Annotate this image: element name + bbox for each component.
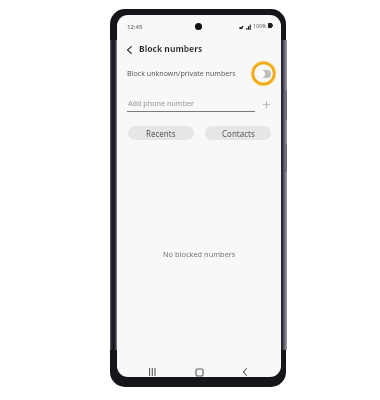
staticText: Block numbers	[139, 43, 203, 55]
staticText: 12:45	[127, 23, 143, 31]
button[interactable]: Add contact	[260, 98, 273, 111]
button[interactable]: Recents	[128, 126, 194, 140]
button[interactable]: Add phone number	[127, 97, 255, 112]
button[interactable]: Recents	[144, 364, 160, 377]
staticText: Add phone number	[128, 98, 194, 108]
button[interactable]: Contacts	[205, 126, 271, 140]
staticText: No blocked numbers	[163, 249, 236, 259]
staticText: Contacts	[222, 128, 255, 139]
button[interactable]: Block unknown/private numbers	[117, 61, 281, 86]
button[interactable]: Block unknown/private numbers toggle	[251, 61, 276, 86]
staticText: Block unknown/private numbers	[127, 68, 236, 78]
button[interactable]: Back	[121, 41, 138, 58]
button[interactable]: Home	[191, 364, 207, 377]
button[interactable]: Back	[237, 364, 253, 377]
staticText: Recents	[146, 128, 176, 139]
staticText: 100%	[253, 22, 267, 29]
